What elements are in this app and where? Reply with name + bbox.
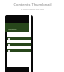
staticText: Contents Thumbnail	[13, 2, 52, 7]
staticText: Headline	[8, 28, 17, 31]
button[interactable]	[7, 37, 31, 40]
button[interactable]	[7, 49, 31, 52]
button[interactable]	[7, 43, 31, 46]
staticText: a small subtitle line here	[21, 8, 44, 11]
